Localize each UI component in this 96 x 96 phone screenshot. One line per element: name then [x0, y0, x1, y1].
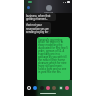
button[interactable]: General's governing which for owner n to… [37, 37, 70, 81]
button[interactable]: More [65, 86, 69, 90]
button[interactable]: that not your reservation yes we sending… [25, 22, 51, 34]
button[interactable]: Back [27, 6, 30, 9]
button[interactable]: Camera [40, 86, 44, 90]
staticText: Nina Lee [44, 11, 53, 14]
button[interactable]: Gallery [27, 86, 31, 90]
staticText: business, when that getting moment... [26, 14, 51, 20]
button[interactable]: Favourite [59, 86, 63, 90]
button[interactable]: business, when that getting moment... [25, 13, 56, 21]
button[interactable]: Music [46, 86, 50, 90]
button[interactable]: Contacts [33, 86, 37, 90]
button[interactable]: Contact avatar [46, 5, 52, 11]
staticText: General's governing which for owner n to… [38, 38, 69, 74]
staticText: that not your reservation yes we sending… [26, 23, 49, 33]
button[interactable]: Files [52, 86, 56, 90]
